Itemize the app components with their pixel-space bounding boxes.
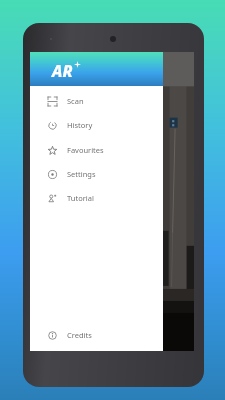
button[interactable]: History: [30, 113, 163, 137]
staticText: History: [67, 120, 93, 130]
button[interactable]: Settings: [30, 162, 163, 186]
staticText: Credits: [67, 330, 92, 340]
button[interactable]: Favourites: [30, 138, 163, 162]
staticText: Settings: [67, 169, 96, 179]
staticText: Scan: [67, 96, 84, 106]
button[interactable]: Tutorial: [30, 186, 163, 210]
button[interactable]: Credits: [30, 323, 163, 347]
staticText: Tutorial: [67, 193, 94, 203]
staticText: Favourites: [67, 145, 104, 155]
button[interactable]: Scan: [30, 89, 163, 113]
staticText: AR: [52, 60, 73, 82]
